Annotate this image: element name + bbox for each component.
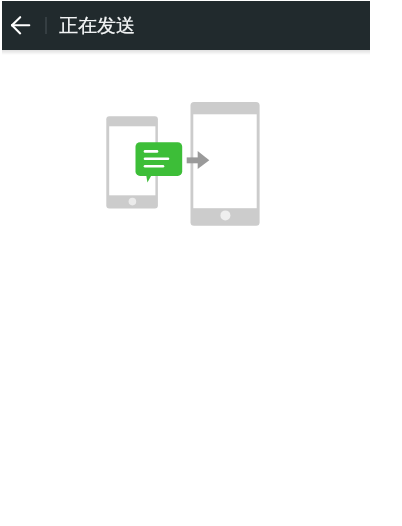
staticText: 正在发送 xyxy=(59,14,135,38)
button[interactable]: Back xyxy=(2,1,44,50)
